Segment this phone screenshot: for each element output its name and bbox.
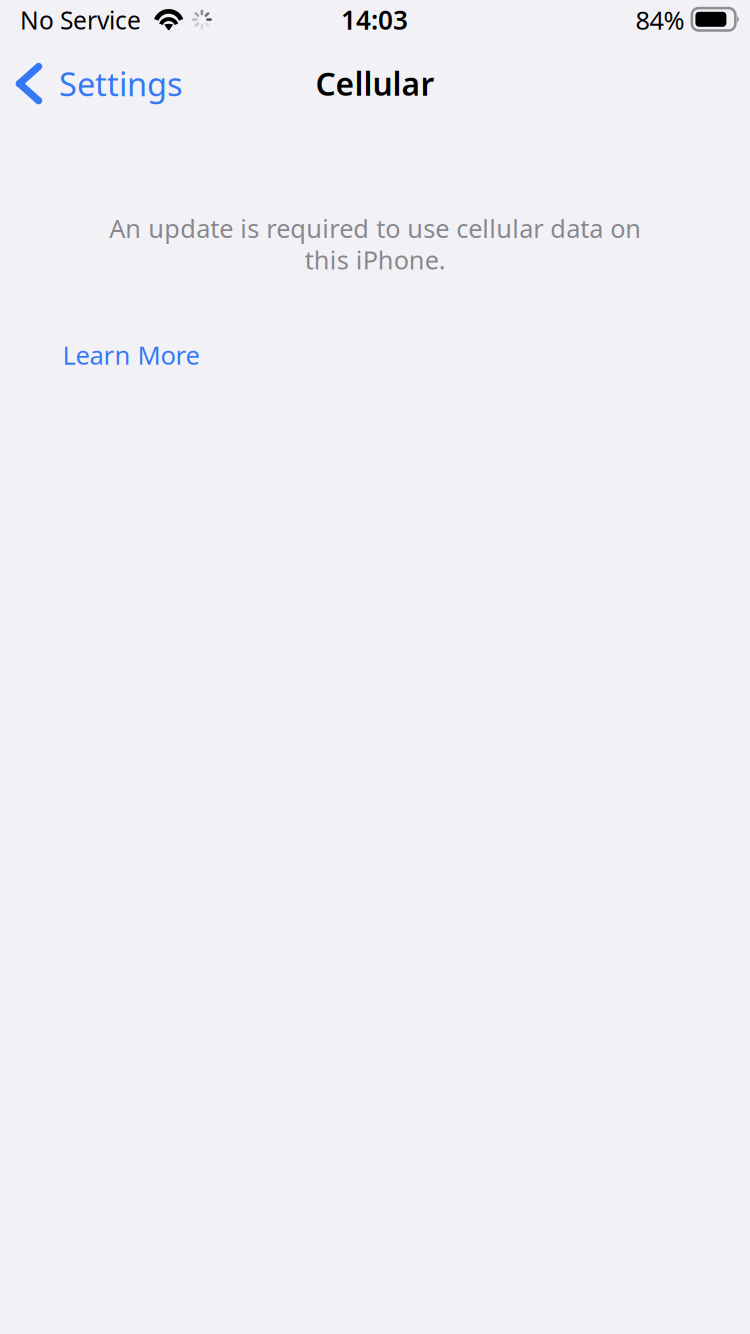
staticText: No Service	[20, 3, 141, 37]
button[interactable]: Settings	[0, 54, 250, 114]
staticText: Learn More	[63, 337, 200, 372]
staticText: 14:03	[341, 2, 408, 37]
staticText: An update is required to use cellular da…	[109, 211, 641, 277]
button[interactable]: Learn More	[0, 328, 320, 381]
staticText: Settings	[59, 61, 183, 106]
staticText: 84%	[635, 2, 684, 37]
staticText: Cellular	[315, 62, 434, 105]
